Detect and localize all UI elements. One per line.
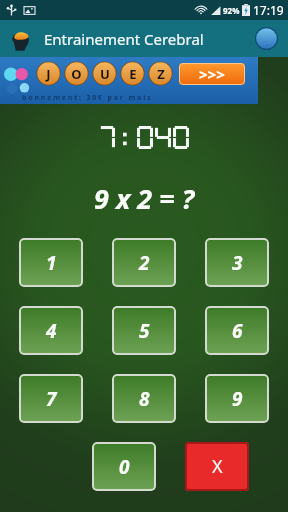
button[interactable]: App icon bbox=[8, 26, 34, 52]
button[interactable]: 2 bbox=[112, 238, 176, 287]
staticText: 1 bbox=[46, 250, 57, 276]
staticText: 8 bbox=[139, 386, 150, 412]
staticText: >>> bbox=[199, 64, 225, 84]
button[interactable]: Clear bbox=[185, 442, 249, 491]
staticText: 17:19 bbox=[253, 2, 284, 18]
staticText: J bbox=[46, 65, 51, 83]
staticText: 2 bbox=[139, 250, 150, 276]
button[interactable]: Help bbox=[254, 26, 279, 51]
staticText: X bbox=[212, 454, 223, 479]
button[interactable]: 3 bbox=[205, 238, 269, 287]
button[interactable]: 5 bbox=[112, 306, 176, 355]
staticText: 4 bbox=[46, 318, 57, 344]
staticText: 6 bbox=[232, 318, 243, 344]
staticText: Entrainement Cerebral bbox=[44, 29, 204, 49]
staticText: 9 bbox=[232, 386, 243, 412]
button[interactable]: 9 bbox=[205, 374, 269, 423]
staticText: 5 bbox=[139, 318, 150, 344]
button[interactable]: 6 bbox=[205, 306, 269, 355]
staticText: E bbox=[129, 65, 137, 83]
button[interactable]: 8 bbox=[112, 374, 176, 423]
staticText: 7 bbox=[46, 386, 57, 412]
button[interactable]: 4 bbox=[19, 306, 83, 355]
staticText: 92% bbox=[223, 5, 240, 16]
staticText: b o n n e m e n t : 3 0 € p a r m o i s bbox=[22, 93, 151, 103]
button[interactable]: Advertisement bbox=[0, 57, 258, 104]
button[interactable]: 1 bbox=[19, 238, 83, 287]
staticText: U bbox=[100, 65, 110, 83]
staticText: 0 bbox=[119, 454, 130, 480]
staticText: O bbox=[71, 65, 82, 83]
staticText: 3 bbox=[232, 250, 243, 276]
staticText: 9 x 2 = ? bbox=[94, 180, 195, 217]
button[interactable]: 0 bbox=[92, 442, 156, 491]
staticText: Z bbox=[157, 65, 165, 83]
button[interactable]: Play now bbox=[179, 63, 245, 85]
button[interactable]: 7 bbox=[19, 374, 83, 423]
